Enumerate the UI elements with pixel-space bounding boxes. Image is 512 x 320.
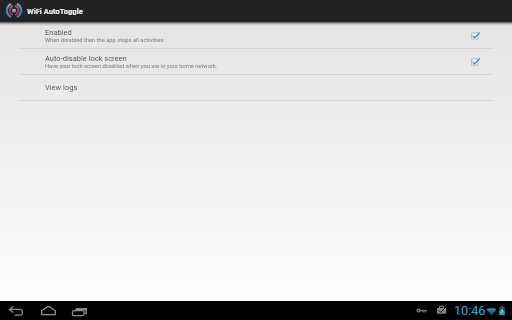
button[interactable]: System status xyxy=(414,301,512,320)
button[interactable]: View logs xyxy=(0,75,512,100)
button[interactable]: WiFi AutoToggle xyxy=(0,0,89,21)
staticText: When disabled then the app stops all act… xyxy=(45,37,165,44)
staticText: WiFi AutoToggle xyxy=(27,7,83,16)
staticText: Enabled xyxy=(45,28,72,37)
button[interactable]: Home xyxy=(41,306,56,315)
staticText: View logs xyxy=(45,83,78,92)
button[interactable]: Auto-disable lock screen xyxy=(0,49,512,74)
staticText: Have your lock screen disabled when you … xyxy=(45,63,218,70)
staticText: 10:46 xyxy=(454,303,486,318)
button[interactable]: Enabled xyxy=(0,23,512,48)
button[interactable]: Back xyxy=(8,306,23,316)
button[interactable]: Recent apps xyxy=(72,305,87,316)
staticText: Auto-disable lock screen xyxy=(45,54,127,63)
